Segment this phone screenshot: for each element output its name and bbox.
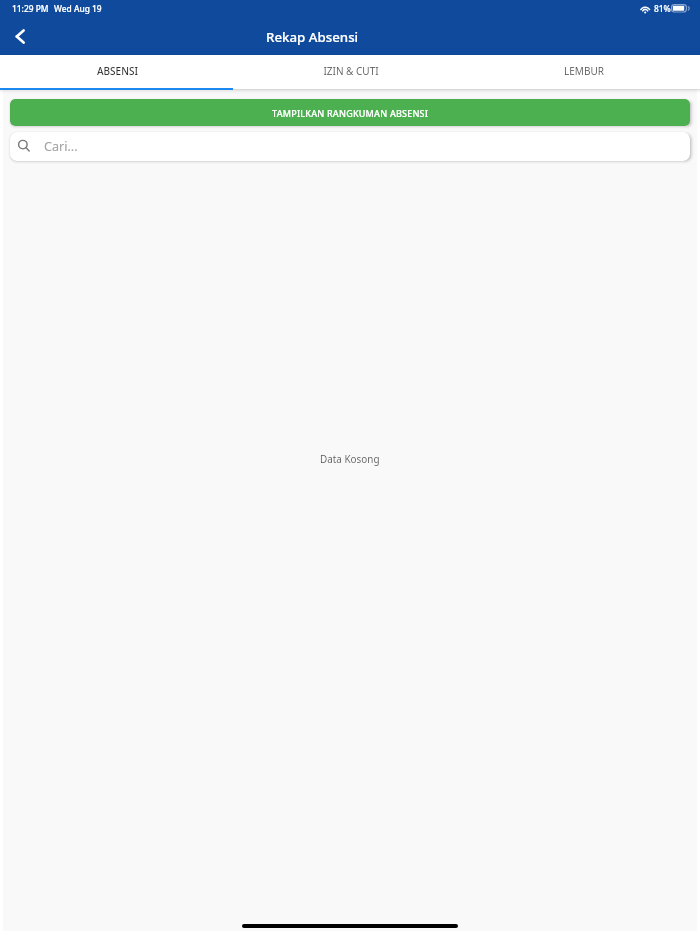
button[interactable]: ABSENSI [0, 55, 234, 89]
button[interactable]: IZIN & CUTI [234, 55, 467, 89]
button[interactable]: Back [5, 21, 35, 51]
staticText: 81% [654, 3, 671, 14]
button[interactable]: Cari... [10, 132, 690, 161]
staticText: LEMBUR [564, 64, 604, 78]
staticText: IZIN & CUTI [323, 64, 379, 78]
staticText: Data Kosong [320, 452, 380, 465]
staticText: Wed Aug 19 [54, 3, 102, 14]
staticText: ABSENSI [97, 64, 138, 78]
staticText: Rekap Absensi [266, 28, 359, 46]
button[interactable]: LEMBUR [467, 55, 700, 89]
staticText: Cari... [44, 138, 78, 155]
staticText: TAMPILKAN RANGKUMAN ABSENSI [272, 107, 429, 119]
button[interactable]: TAMPILKAN RANGKUMAN ABSENSI [10, 99, 690, 126]
staticText: 11:29 PM [12, 3, 49, 14]
